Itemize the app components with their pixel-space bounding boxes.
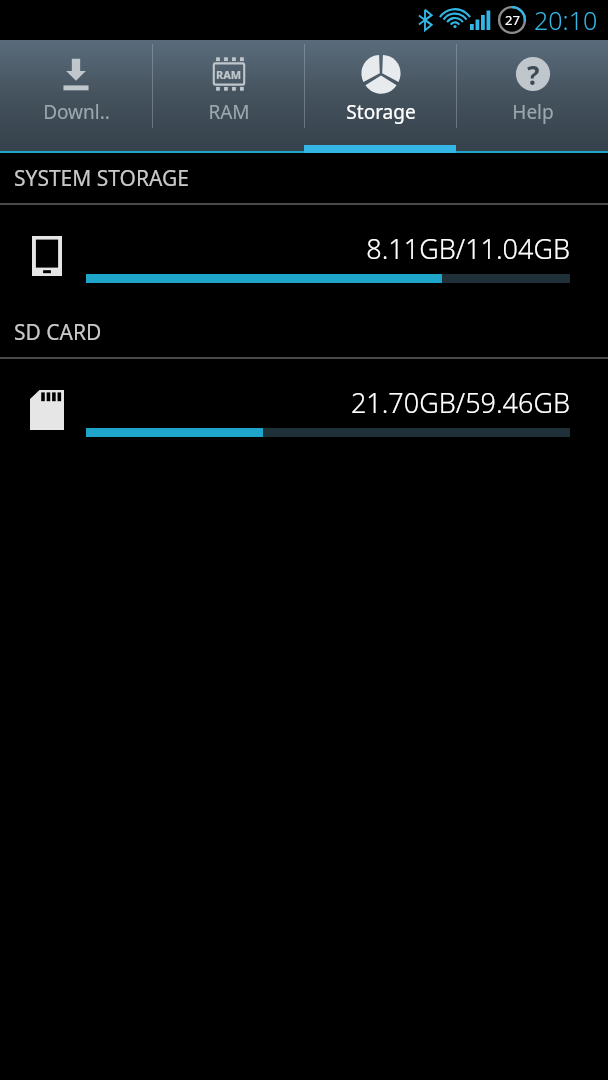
staticText: ? <box>527 57 540 92</box>
button[interactable]: Storage <box>305 40 456 153</box>
staticText: 21.70GB/59.46GB <box>86 384 570 421</box>
staticText: Downl.. <box>43 99 110 125</box>
staticText: SD CARD <box>14 318 102 347</box>
staticText: Help <box>512 99 554 125</box>
button[interactable]: Downl.. <box>0 40 152 153</box>
staticText: Storage <box>346 99 416 125</box>
staticText: 27 <box>505 11 520 29</box>
staticText: 20:10 <box>534 3 598 37</box>
staticText: 8.11GB/11.04GB <box>86 230 570 267</box>
button[interactable]: 21.70GB/59.46GB <box>0 359 608 461</box>
staticText: RAM <box>208 99 250 125</box>
staticText: RAM <box>216 67 242 82</box>
button[interactable]: ? <box>457 40 608 153</box>
staticText: SYSTEM STORAGE <box>14 164 190 193</box>
button[interactable]: 8.11GB/11.04GB <box>0 205 608 307</box>
button[interactable]: RAM <box>153 40 304 153</box>
